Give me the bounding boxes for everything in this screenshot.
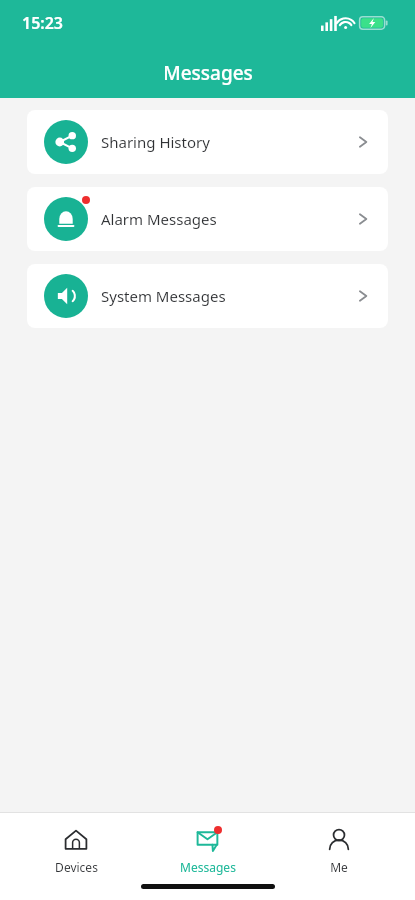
- button[interactable]: Alarm Messages: [27, 187, 388, 251]
- staticText: Messages: [163, 60, 253, 86]
- button[interactable]: Messages: [153, 813, 263, 875]
- other: Messages: [195, 827, 221, 853]
- staticText: Devices: [55, 859, 98, 875]
- staticText: Me: [330, 859, 348, 875]
- staticText: Sharing History: [101, 132, 210, 152]
- button[interactable]: Devices: [21, 813, 131, 875]
- staticText: Messages: [180, 859, 236, 875]
- other: Devices: [63, 827, 89, 853]
- button[interactable]: System Messages: [27, 264, 388, 328]
- staticText: 15:23: [22, 12, 64, 34]
- button[interactable]: Sharing History: [27, 110, 388, 174]
- other: Me: [326, 827, 352, 853]
- button[interactable]: Me: [284, 813, 394, 875]
- staticText: System Messages: [101, 286, 226, 306]
- staticText: Alarm Messages: [101, 209, 217, 229]
